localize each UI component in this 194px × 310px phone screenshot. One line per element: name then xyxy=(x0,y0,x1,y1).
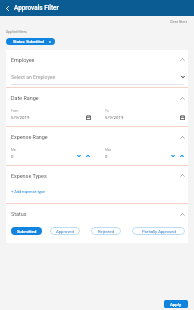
staticText: Select an Employee xyxy=(11,74,56,80)
staticText: 0 xyxy=(11,154,14,159)
button[interactable]: Expense Range xyxy=(6,127,188,147)
button[interactable]: Date Range xyxy=(6,88,188,108)
staticText: Applied filters xyxy=(6,30,27,34)
staticText: + Add expense type xyxy=(11,189,45,194)
staticText: Clear filters xyxy=(170,20,188,24)
staticText: Approved xyxy=(56,229,74,234)
button[interactable]: Status xyxy=(6,204,188,224)
staticText: Submitted xyxy=(17,229,37,234)
button[interactable]: Approved xyxy=(50,227,80,235)
button[interactable]: To xyxy=(105,108,185,121)
button[interactable]: Increase xyxy=(179,154,185,158)
staticText: Status xyxy=(11,211,27,217)
button[interactable]: Back xyxy=(0,0,14,16)
staticText: Max xyxy=(105,148,112,152)
staticText: Expense Types xyxy=(11,173,47,179)
staticText: Apply xyxy=(170,302,182,307)
button[interactable]: Clear filters xyxy=(164,18,194,26)
button[interactable]: Decrease xyxy=(76,154,82,158)
button[interactable]: Apply xyxy=(164,300,188,308)
staticText: 5/9/2019 xyxy=(11,115,30,120)
staticText: Partially Approved xyxy=(142,229,176,234)
staticText: 0 xyxy=(105,154,108,159)
button[interactable]: Decrease xyxy=(170,154,176,158)
button[interactable]: Status: Submitted xyxy=(6,38,55,45)
staticText: Rejected xyxy=(98,229,115,234)
staticText: Status: Submitted xyxy=(13,39,45,44)
staticText: Date Range xyxy=(11,95,39,101)
button[interactable]: Expense Types xyxy=(6,166,188,185)
staticText: Expense Range xyxy=(11,134,48,140)
staticText: Employee xyxy=(11,57,35,63)
button[interactable]: From xyxy=(11,108,91,121)
staticText: From xyxy=(11,109,19,113)
button[interactable]: Rejected xyxy=(91,227,121,235)
button[interactable]: Submitted xyxy=(11,227,42,235)
button[interactable]: Max xyxy=(105,147,185,160)
staticText: 5/9/2019 xyxy=(105,115,124,120)
button[interactable]: Select an Employee xyxy=(6,69,188,84)
staticText: Min xyxy=(11,148,17,152)
button[interactable]: + Add expense type xyxy=(11,188,45,195)
button[interactable]: Employee xyxy=(6,50,188,69)
staticText: To xyxy=(105,109,109,113)
button[interactable]: Increase xyxy=(85,154,91,158)
button[interactable]: Min xyxy=(11,147,91,160)
staticText: Approvals Filter xyxy=(14,4,59,12)
button[interactable]: Partially Approved xyxy=(132,227,185,235)
